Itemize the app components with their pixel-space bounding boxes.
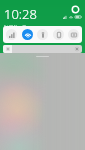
staticText: Fri 08 Nov, iPhone xyxy=(4,24,34,29)
staticText: 10:28 xyxy=(4,5,37,23)
button[interactable]: Auto rotate xyxy=(53,29,64,40)
button[interactable]: Settings xyxy=(70,4,80,14)
button[interactable]: Flashlight xyxy=(37,29,48,40)
button[interactable]: Screenshot xyxy=(68,29,79,40)
button[interactable]: Brightness xyxy=(3,45,82,53)
button[interactable]: Mobile data xyxy=(6,29,17,40)
button[interactable]: Wi-Fi xyxy=(22,29,33,40)
